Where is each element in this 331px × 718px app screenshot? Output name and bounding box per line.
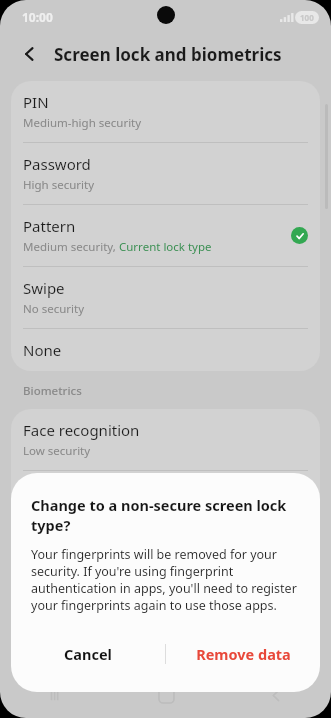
button[interactable]: Face recognition bbox=[11, 409, 320, 470]
staticText: Change to a non-secure screen lock type? bbox=[31, 495, 300, 535]
staticText: Remove data bbox=[196, 644, 291, 664]
staticText: No security bbox=[23, 301, 85, 317]
staticText: 100 bbox=[300, 12, 314, 23]
button[interactable]: Recents bbox=[0, 672, 111, 718]
staticText: Biometrics bbox=[23, 383, 82, 399]
staticText: PIN bbox=[23, 92, 49, 112]
staticText: Screen lock and biometrics bbox=[54, 43, 282, 66]
staticText: Current lock type bbox=[119, 239, 212, 255]
staticText: Pattern bbox=[23, 216, 76, 236]
staticText: Swipe bbox=[23, 278, 65, 298]
button[interactable]: Cancel bbox=[11, 632, 165, 676]
button[interactable]: Swipe bbox=[11, 267, 320, 328]
staticText: High security bbox=[23, 177, 95, 193]
staticText: Low security bbox=[23, 443, 91, 459]
button[interactable]: Back bbox=[221, 672, 331, 718]
staticText: Medium security, bbox=[23, 239, 119, 255]
staticText: Your fingerprints will be removed for yo… bbox=[31, 546, 300, 614]
button[interactable]: None bbox=[11, 329, 320, 371]
button[interactable]: Fingerprints bbox=[11, 471, 320, 532]
staticText: Face recognition bbox=[23, 420, 140, 440]
staticText: Fingerprints bbox=[23, 482, 109, 502]
button[interactable]: Back bbox=[16, 40, 44, 68]
staticText: None bbox=[23, 340, 62, 360]
button[interactable]: Home bbox=[111, 672, 221, 718]
staticText: Medium-high security bbox=[23, 115, 142, 131]
button[interactable]: Pattern bbox=[11, 205, 320, 266]
button[interactable]: Remove data bbox=[166, 632, 320, 676]
staticText: Cancel bbox=[64, 644, 112, 664]
staticText: 10:00 bbox=[22, 9, 53, 25]
button[interactable]: PIN bbox=[11, 81, 320, 142]
staticText: High security bbox=[23, 505, 95, 521]
button[interactable]: Password bbox=[11, 143, 320, 204]
staticText: Password bbox=[23, 154, 91, 174]
